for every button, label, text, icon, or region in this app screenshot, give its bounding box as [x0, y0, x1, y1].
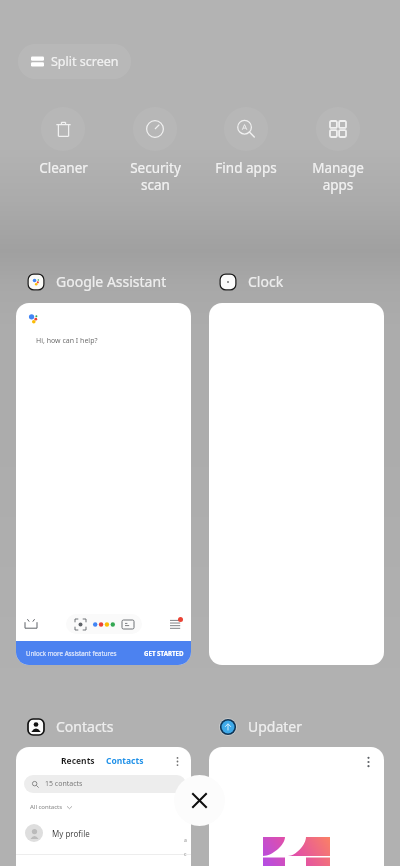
- staticText: Google Assistant: [56, 272, 167, 291]
- staticText: Unlock more Assistant features: [26, 649, 117, 657]
- staticText: Clock: [248, 272, 284, 291]
- staticText: Cleaner: [39, 159, 88, 177]
- staticText: Split screen: [51, 53, 119, 70]
- button[interactable]: Hi, how can I help?: [16, 303, 191, 665]
- button[interactable]: Split screen: [18, 44, 131, 79]
- button[interactable]: Find apps: [200, 107, 292, 177]
- staticText: Security scan: [130, 159, 181, 194]
- button[interactable]: Cleaner: [17, 107, 109, 177]
- staticText: 15 contacts: [45, 779, 83, 789]
- staticText: Find apps: [215, 159, 277, 177]
- button[interactable]: Close all: [174, 775, 225, 826]
- staticText: All contacts: [30, 803, 63, 811]
- button[interactable]: Recents: [16, 747, 191, 866]
- staticText: Hi, how can I help?: [36, 336, 98, 346]
- staticText: My profile: [52, 828, 90, 839]
- button[interactable]: Security scan: [109, 107, 201, 194]
- staticText: Manage apps: [312, 159, 364, 194]
- staticText: c: [184, 851, 187, 858]
- staticText: Recents: [61, 755, 95, 767]
- staticText: a: [184, 837, 187, 844]
- staticText: GET STARTED: [144, 649, 184, 657]
- staticText: Contacts: [106, 755, 144, 767]
- staticText: Updater: [248, 717, 303, 736]
- button[interactable]: [209, 303, 384, 665]
- button[interactable]: [209, 747, 384, 866]
- staticText: Contacts: [56, 717, 114, 736]
- button[interactable]: Manage apps: [292, 107, 384, 194]
